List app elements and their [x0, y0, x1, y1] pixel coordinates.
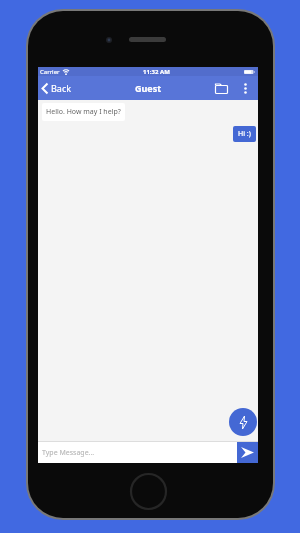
button[interactable]: Hi :)	[233, 126, 256, 142]
button[interactable]	[240, 83, 250, 93]
button[interactable]	[237, 442, 258, 463]
staticText: Back	[51, 82, 72, 94]
staticText: Carrier	[40, 68, 60, 76]
button[interactable]: Hello. How may I help?	[42, 103, 125, 121]
button[interactable]: Back	[41, 82, 72, 94]
staticText: Type Message...	[42, 448, 95, 458]
staticText: 11:32 AM	[143, 68, 170, 76]
button[interactable]	[229, 408, 257, 436]
staticText: Hello. How may I help?	[46, 107, 121, 117]
staticText: Hi :)	[238, 129, 251, 139]
staticText: Guest	[135, 82, 162, 94]
button[interactable]	[214, 81, 228, 95]
button[interactable]: Type Message...	[38, 442, 237, 463]
